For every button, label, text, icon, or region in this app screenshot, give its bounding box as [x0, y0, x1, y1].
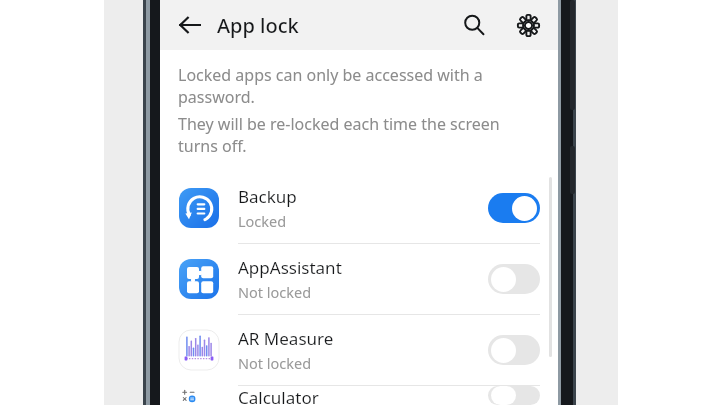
staticText: AppAssistant [238, 256, 342, 279]
staticText: App lock [217, 12, 299, 39]
staticText: Locked [238, 211, 287, 231]
button[interactable]: Not locked [488, 335, 540, 365]
button[interactable]: Locked [488, 193, 540, 223]
button[interactable]: Backup [160, 173, 558, 243]
button[interactable]: Search [454, 5, 494, 45]
button[interactable]: Not locked [488, 264, 540, 294]
button[interactable]: AppAssistant [160, 244, 558, 314]
staticText: Calculator [238, 386, 319, 405]
staticText: Backup [238, 185, 297, 208]
staticText: Not locked [238, 353, 312, 373]
button[interactable]: Settings [508, 5, 548, 45]
button[interactable]: AR Measure [160, 315, 558, 385]
button[interactable]: Back [171, 6, 209, 44]
button[interactable]: Calculator [160, 386, 558, 405]
staticText: Locked apps can only be accessed with a … [178, 64, 540, 108]
staticText: They will be re-locked each time the scr… [178, 113, 540, 157]
staticText: Not locked [238, 282, 312, 302]
button[interactable]: Not locked [488, 386, 540, 405]
staticText: AR Measure [238, 327, 334, 350]
